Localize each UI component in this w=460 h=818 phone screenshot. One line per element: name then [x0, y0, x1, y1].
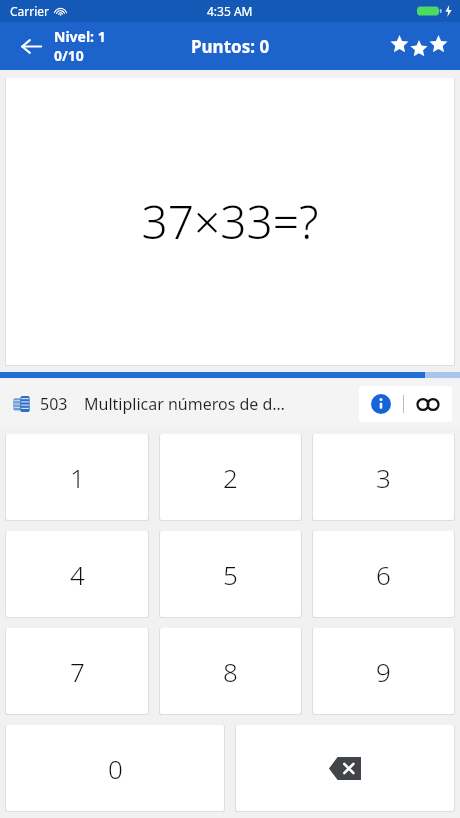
staticText: 4:35 AM: [207, 3, 253, 19]
button[interactable]: 7: [6, 628, 148, 714]
button[interactable]: 9: [313, 628, 454, 714]
staticText: 2: [223, 460, 238, 495]
button[interactable]: Unlimited: [404, 386, 452, 422]
button[interactable]: Nivel: 1: [54, 27, 106, 65]
staticText: Multiplicar números de d…: [84, 393, 353, 415]
button[interactable]: 6: [313, 531, 454, 617]
staticText: 7: [70, 654, 85, 689]
staticText: Nivel: 1: [54, 27, 106, 46]
button[interactable]: 37×33=?: [6, 78, 454, 365]
staticText: 0: [108, 751, 123, 786]
staticText: 9: [376, 654, 391, 689]
button[interactable]: Back: [14, 29, 48, 63]
button[interactable]: 0: [6, 725, 224, 811]
staticText: 4: [70, 557, 85, 592]
button[interactable]: Backspace: [236, 725, 454, 811]
button[interactable]: 503: [8, 393, 72, 415]
staticText: 0/10: [54, 46, 84, 65]
staticText: Puntos: 0: [191, 35, 270, 58]
button[interactable]: Information: [359, 386, 403, 422]
button[interactable]: 8: [160, 628, 301, 714]
staticText: 5: [223, 557, 238, 592]
button[interactable]: 4: [6, 531, 148, 617]
staticText: 37×33=?: [141, 190, 319, 253]
staticText: Carrier: [10, 3, 50, 19]
staticText: 6: [376, 557, 391, 592]
button[interactable]: 5: [160, 531, 301, 617]
staticText: 1: [70, 460, 85, 495]
button[interactable]: 3: [313, 434, 454, 520]
button[interactable]: 2: [160, 434, 301, 520]
button[interactable]: 1: [6, 434, 148, 520]
staticText: 8: [223, 654, 238, 689]
button[interactable]: Stars earned: [390, 37, 448, 56]
staticText: 3: [376, 460, 391, 495]
staticText: 503: [40, 393, 68, 415]
